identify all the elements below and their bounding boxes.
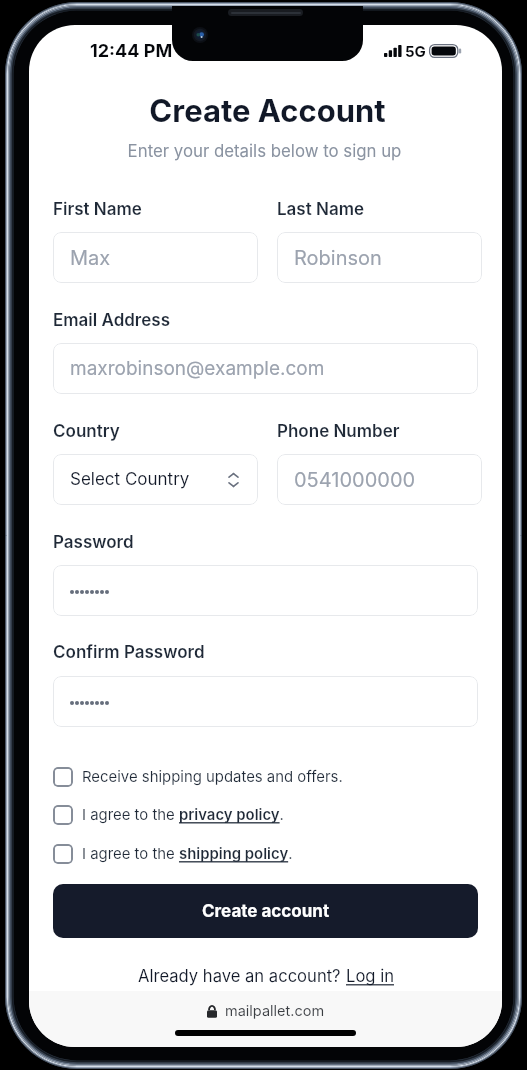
staticText: 5G <box>405 42 426 60</box>
staticText: maxrobinson@example.com <box>70 357 325 380</box>
button[interactable]: Robinson <box>277 232 482 283</box>
button[interactable]: Select Country <box>53 454 258 505</box>
button[interactable]: I agree to the shipping policy. <box>53 841 478 867</box>
staticText: Phone Number <box>277 421 400 442</box>
button[interactable]: Max <box>53 232 258 283</box>
staticText: Email Address <box>53 310 170 331</box>
button[interactable]: 0541000000 <box>277 454 482 505</box>
staticText: Country <box>53 421 120 442</box>
staticText: First Name <box>53 199 142 220</box>
button[interactable]: maxrobinson@example.com <box>53 343 478 394</box>
button[interactable]: Receive shipping updates and offers. <box>53 764 478 790</box>
staticText: Create account <box>202 901 330 922</box>
staticText: Confirm Password <box>53 642 205 663</box>
staticText: mailpallet.com <box>225 1002 325 1020</box>
staticText: Last Name <box>277 199 365 220</box>
staticText: Select Country <box>70 469 190 490</box>
button[interactable]: I agree to the privacy policy. <box>53 802 478 828</box>
staticText: 12:44 PM <box>90 40 173 62</box>
button[interactable]: Log in <box>346 966 394 986</box>
button[interactable] <box>53 565 478 616</box>
button[interactable] <box>53 676 478 727</box>
staticText: 0541000000 <box>294 468 416 492</box>
staticText: Already have an account? <box>138 966 346 986</box>
staticText: Max <box>70 246 111 270</box>
staticText: I agree to the privacy policy. <box>82 806 284 824</box>
staticText: Create Account <box>31 92 502 130</box>
staticText: Enter your details below to sign up <box>29 141 501 161</box>
staticText: Password <box>53 532 134 553</box>
staticText: I agree to the shipping policy. <box>82 845 293 863</box>
staticText: Robinson <box>294 246 382 270</box>
button[interactable]: Create account <box>53 884 478 938</box>
staticText: Receive shipping updates and offers. <box>82 768 343 786</box>
